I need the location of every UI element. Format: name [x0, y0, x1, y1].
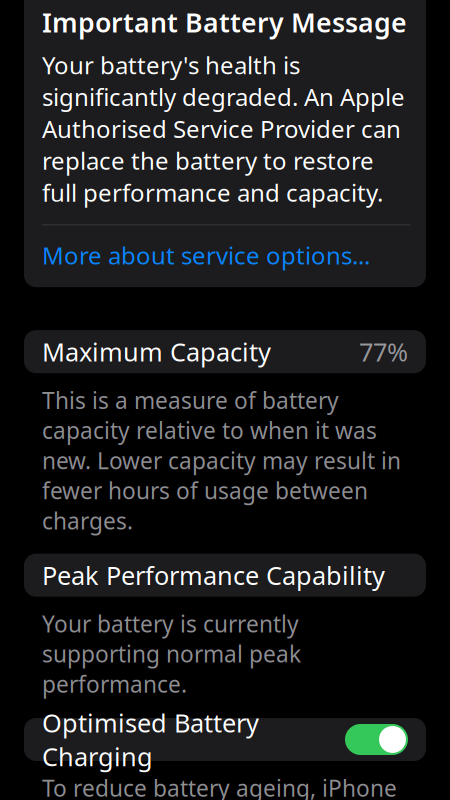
button[interactable]: Optimised Battery Charging — [24, 718, 426, 761]
button[interactable]: More about service options... — [42, 225, 410, 287]
staticText: 77% — [359, 335, 408, 368]
staticText: This is a measure of battery capacity re… — [42, 385, 401, 536]
staticText: Maximum Capacity — [42, 335, 271, 368]
staticText: Optimised Battery Charging — [42, 706, 259, 773]
staticText: More about service options... — [42, 239, 370, 271]
staticText: Your battery is currently supporting nor… — [42, 609, 301, 699]
button[interactable]: Maximum Capacity — [24, 330, 426, 373]
staticText: Peak Performance Capability — [42, 558, 385, 592]
staticText: To reduce battery ageing, iPhone learns … — [42, 773, 400, 800]
button[interactable]: Peak Performance Capability — [24, 554, 426, 597]
staticText: Your battery's health is significantly d… — [42, 49, 405, 208]
staticText: Important Battery Message — [42, 4, 407, 40]
